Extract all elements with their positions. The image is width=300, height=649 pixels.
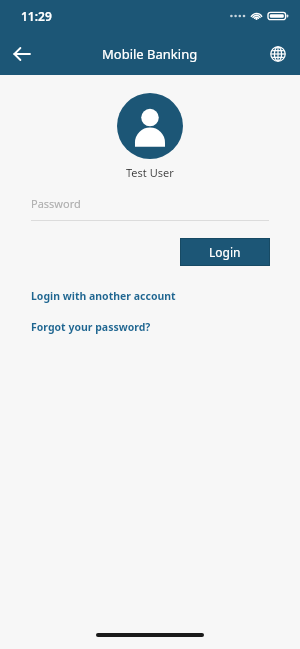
staticText: Mobile Banking [102,45,198,63]
button[interactable]: Back [0,32,44,75]
staticText: Test User [126,165,174,180]
button[interactable]: Language [256,32,300,75]
staticText: 11:29 [21,8,52,24]
staticText: Login [209,244,241,260]
button[interactable]: Password [31,196,269,221]
staticText: Forgot your password? [31,320,151,334]
staticText: Login with another account [31,289,176,303]
button[interactable]: Login with another account [31,289,176,303]
staticText: Password [31,196,81,211]
button[interactable]: Forgot your password? [31,320,151,334]
button[interactable]: Login [180,238,270,266]
